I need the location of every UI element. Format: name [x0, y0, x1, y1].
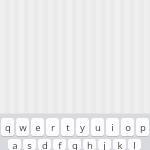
button[interactable]: Key g [68, 139, 81, 150]
button[interactable]: Key a [8, 139, 21, 150]
button[interactable]: Key j [98, 139, 111, 150]
button[interactable]: Key u [91, 117, 104, 136]
button[interactable]: Key t [61, 117, 74, 136]
button[interactable]: Key s [23, 139, 36, 150]
button[interactable]: Key k [113, 139, 126, 150]
button[interactable]: Key w [16, 117, 29, 136]
staticText: d [42, 139, 48, 150]
button[interactable]: Key r [46, 117, 59, 136]
button[interactable]: Key y [76, 117, 89, 136]
staticText: p [140, 121, 146, 134]
staticText: w [19, 121, 27, 134]
button[interactable]: Key p [136, 117, 149, 136]
staticText: h [87, 139, 93, 150]
staticText: g [72, 139, 78, 150]
staticText: q [5, 121, 11, 134]
staticText: o [125, 121, 131, 134]
staticText: f [58, 139, 62, 150]
staticText: k [117, 139, 123, 150]
button[interactable]: Key h [83, 139, 96, 150]
staticText: u [95, 121, 101, 134]
staticText: s [27, 139, 32, 150]
button[interactable]: Key i [106, 117, 119, 136]
button[interactable]: Key d [38, 139, 51, 150]
button[interactable]: Key o [121, 117, 134, 136]
button[interactable]: Key e [31, 117, 44, 136]
staticText: j [103, 139, 106, 150]
staticText: r [51, 121, 55, 134]
button[interactable]: Key f [53, 139, 66, 150]
button[interactable]: Key l [128, 139, 141, 150]
staticText: i [111, 121, 114, 134]
staticText: y [80, 121, 85, 134]
staticText: e [35, 121, 41, 134]
staticText: t [66, 121, 70, 134]
button[interactable]: Key q [1, 117, 14, 136]
staticText: a [12, 139, 18, 150]
staticText: l [133, 139, 136, 150]
